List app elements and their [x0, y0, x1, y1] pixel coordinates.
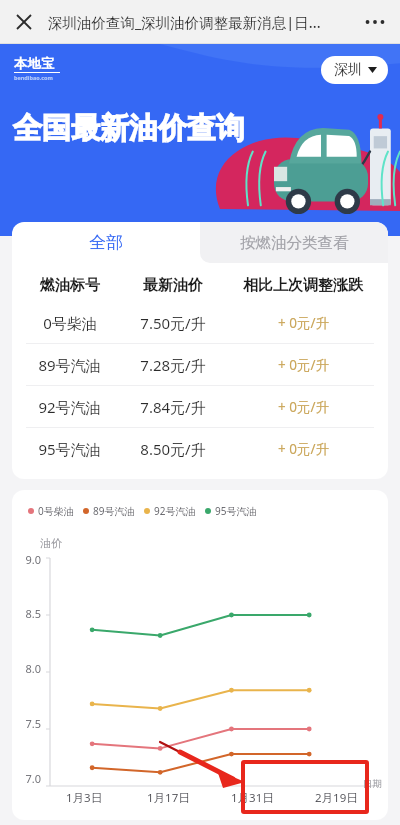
- staticText: 7.0: [12, 771, 41, 786]
- staticText: + 0元/升: [278, 398, 329, 416]
- staticText: 89号汽油: [93, 504, 135, 518]
- staticText: 9.0: [12, 552, 41, 567]
- staticText: 0号柴油: [38, 504, 74, 518]
- button[interactable]: 0号柴油: [12, 302, 388, 343]
- staticText: + 0元/升: [278, 314, 329, 332]
- staticText: 全国最新油价查询: [13, 110, 245, 147]
- button[interactable]: Close: [8, 6, 40, 38]
- staticText: bendibao.com: [14, 74, 53, 81]
- staticText: 89号汽油: [38, 355, 101, 375]
- staticText: 1月3日: [66, 790, 103, 806]
- staticText: 1月31日: [231, 790, 274, 806]
- staticText: 最新油价: [143, 276, 203, 295]
- button[interactable]: 深圳: [321, 56, 388, 84]
- staticText: 8.50元/升: [140, 439, 206, 459]
- staticText: 全部: [89, 232, 123, 253]
- staticText: 深圳油价查询_深圳油价调整最新消息|日...: [48, 12, 321, 32]
- staticText: 7.50元/升: [140, 313, 206, 333]
- staticText: 深圳: [334, 61, 362, 79]
- staticText: 1月17日: [147, 790, 190, 806]
- button[interactable]: 全部: [12, 222, 200, 263]
- staticText: 按燃油分类查看: [240, 233, 349, 253]
- button[interactable]: 89号汽油: [12, 344, 388, 385]
- staticText: 95号汽油: [215, 504, 257, 518]
- staticText: 日期: [363, 778, 382, 790]
- button[interactable]: 95号汽油: [12, 428, 388, 469]
- button[interactable]: 92号汽油: [12, 386, 388, 427]
- staticText: + 0元/升: [278, 356, 329, 374]
- staticText: 7.5: [12, 716, 41, 731]
- staticText: 燃油标号: [40, 276, 100, 295]
- button[interactable]: More options: [358, 5, 392, 39]
- staticText: 8.5: [12, 606, 41, 621]
- staticText: 0号柴油: [43, 313, 97, 333]
- staticText: 本地宝: [14, 55, 55, 71]
- staticText: 油价: [40, 536, 62, 550]
- staticText: 92号汽油: [38, 397, 101, 417]
- staticText: 相比上次调整涨跌: [243, 276, 363, 295]
- staticText: 92号汽油: [154, 504, 196, 518]
- staticText: 7.28元/升: [140, 355, 206, 375]
- staticText: 2月19日: [315, 790, 358, 806]
- staticText: 7.84元/升: [140, 397, 206, 417]
- staticText: 95号汽油: [38, 439, 101, 459]
- staticText: 8.0: [12, 661, 41, 676]
- button[interactable]: 按燃油分类查看: [200, 222, 388, 263]
- staticText: + 0元/升: [278, 440, 329, 458]
